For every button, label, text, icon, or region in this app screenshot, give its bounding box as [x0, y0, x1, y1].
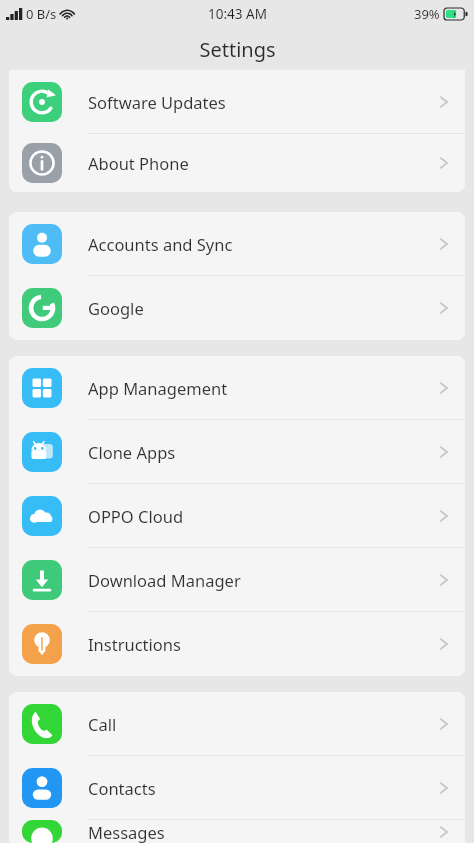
staticText: Accounts and Sync: [88, 233, 233, 255]
button[interactable]: Instructions: [9, 612, 465, 676]
staticText: 0 B/s: [26, 5, 57, 23]
staticText: Google: [88, 297, 144, 319]
button[interactable]: Messages: [9, 820, 465, 843]
button[interactable]: Google: [9, 276, 465, 340]
staticText: App Management: [88, 377, 228, 399]
staticText: OPPO Cloud: [88, 505, 184, 527]
button[interactable]: Call: [9, 692, 465, 756]
button[interactable]: Download Manager: [9, 548, 465, 612]
staticText: Download Manager: [88, 569, 241, 591]
button[interactable]: OPPO Cloud: [9, 484, 465, 548]
staticText: Instructions: [88, 633, 181, 655]
staticText: 10:43 AM: [208, 5, 267, 23]
button[interactable]: Software Updates: [9, 70, 465, 134]
staticText: About Phone: [88, 152, 189, 174]
staticText: Call: [88, 713, 117, 735]
staticText: Settings: [199, 36, 276, 63]
button[interactable]: Contacts: [9, 756, 465, 820]
staticText: Software Updates: [88, 91, 226, 113]
button[interactable]: About Phone: [9, 134, 465, 192]
button[interactable]: Accounts and Sync: [9, 212, 465, 276]
button[interactable]: App Management: [9, 356, 465, 420]
staticText: 39%: [414, 5, 440, 23]
staticText: Contacts: [88, 777, 156, 799]
staticText: Clone Apps: [88, 441, 176, 463]
staticText: Messages: [88, 821, 165, 843]
button[interactable]: Clone Apps: [9, 420, 465, 484]
